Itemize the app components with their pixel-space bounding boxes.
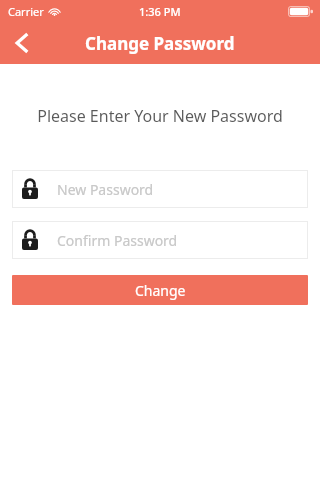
- staticText: Confirm Password: [57, 231, 178, 250]
- button[interactable]: Back: [0, 22, 42, 64]
- staticText: Change: [135, 281, 186, 300]
- staticText: 1:36 PM: [139, 4, 181, 19]
- button[interactable]: Change: [12, 275, 308, 305]
- staticText: Carrier: [8, 4, 44, 19]
- button[interactable]: Confirm Password: [12, 221, 308, 259]
- staticText: Please Enter Your New Password: [37, 105, 283, 127]
- staticText: New Password: [57, 180, 154, 199]
- staticText: Change Password: [85, 32, 235, 55]
- button[interactable]: New Password: [12, 170, 308, 208]
